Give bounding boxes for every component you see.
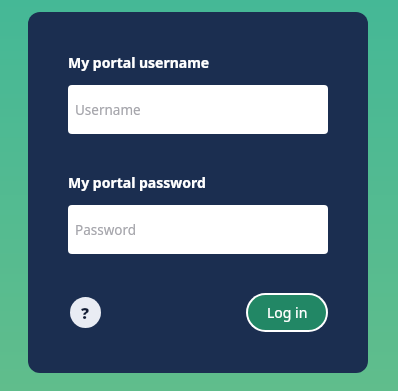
staticText: My portal username xyxy=(68,53,210,72)
staticText: Password xyxy=(75,221,137,239)
button[interactable]: Log in xyxy=(246,293,328,332)
staticText: ? xyxy=(81,302,90,324)
staticText: Username xyxy=(75,101,141,119)
button[interactable]: Username xyxy=(68,85,328,134)
staticText: Log in xyxy=(267,303,308,322)
button[interactable]: Password xyxy=(68,205,328,254)
button[interactable]: Help xyxy=(70,297,101,328)
staticText: My portal password xyxy=(68,173,206,192)
